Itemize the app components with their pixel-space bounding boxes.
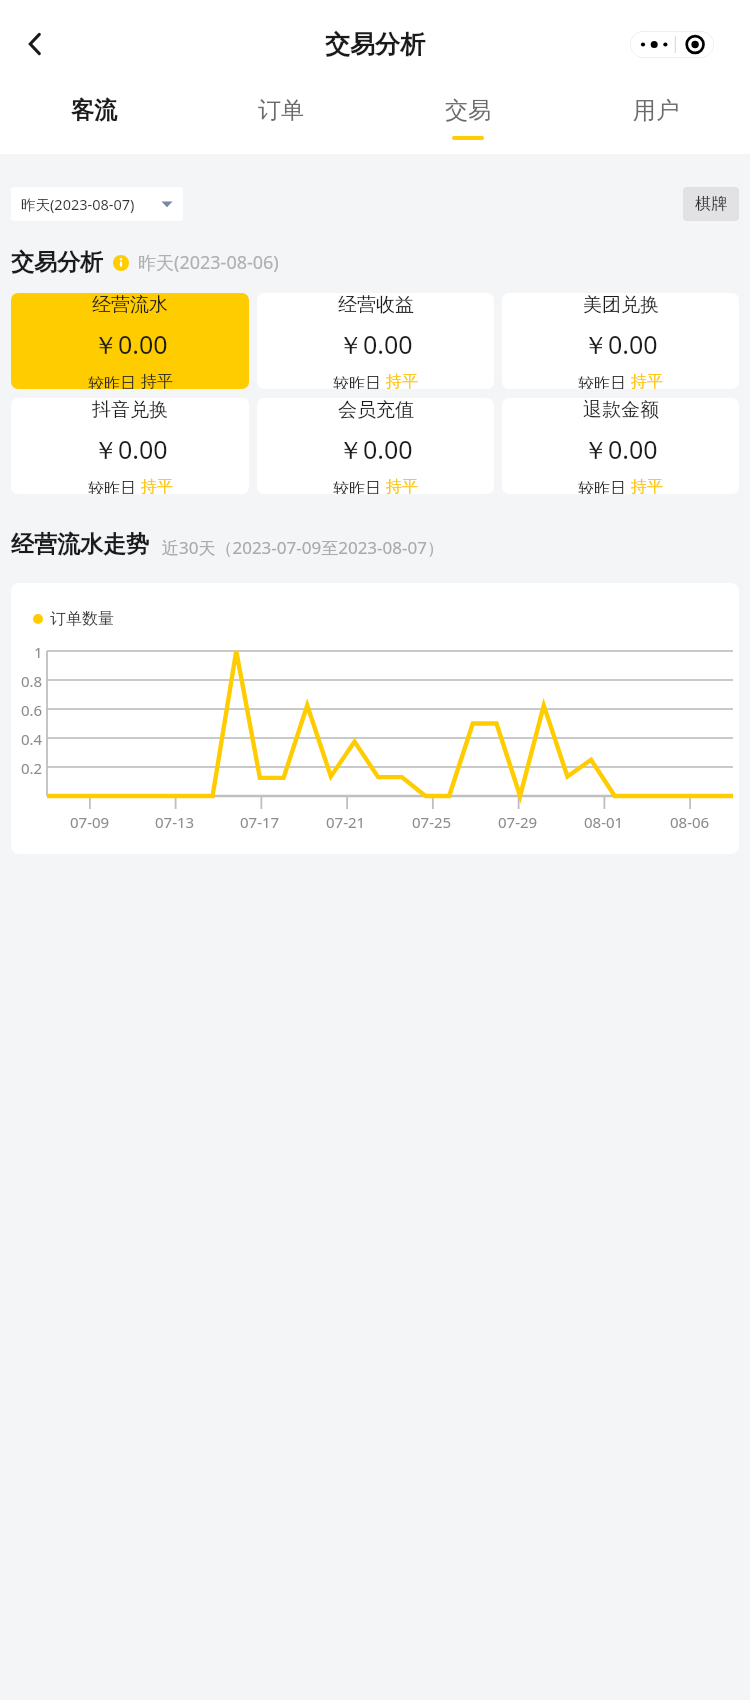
staticText: ￥0.00 [338,327,413,361]
staticText: 客流 [71,96,117,125]
staticText: ￥0.00 [338,432,413,466]
staticText: 昨天(2023-08-06) [138,250,279,275]
staticText: 07-09 [70,812,110,832]
staticText: 持平 [631,372,663,389]
staticText: 07-25 [412,812,452,832]
button[interactable]: 棋牌 [683,187,739,221]
button[interactable]: 订单数量 [11,583,739,854]
staticText: 08-01 [584,812,624,832]
button[interactable]: 经营收益 [257,293,494,389]
staticText: 经营流水 [92,293,168,317]
button[interactable]: 会员充值 [257,398,494,494]
staticText: 会员充值 [338,398,414,422]
staticText: 07-29 [498,812,538,832]
staticText: 持平 [141,372,173,389]
staticText: 抖音兑换 [92,398,168,422]
staticText: 订单数量 [50,609,114,629]
button[interactable]: Info [113,255,129,271]
staticText: 退款金额 [583,398,659,422]
staticText: 近30天（2023-07-09至2023-08-07） [162,536,444,559]
staticText: 美团兑换 [583,293,659,317]
staticText: 持平 [386,372,418,389]
staticText: 持平 [631,477,663,494]
button[interactable]: Back [8,17,62,71]
button[interactable]: More options [630,31,714,58]
staticText: 07-21 [326,812,366,832]
button[interactable]: 昨天(2023-08-07) [11,187,183,221]
staticText: 用户 [633,96,679,125]
staticText: 较昨日 [333,372,386,389]
staticText: 0.4 [21,729,43,749]
staticText: 0.8 [21,671,43,691]
staticText: 较昨日 [88,477,141,494]
staticText: 较昨日 [578,372,631,389]
staticText: 1 [34,642,43,662]
staticText: 交易 [445,96,491,125]
staticText: 0.2 [21,758,43,778]
button[interactable]: 退款金额 [502,398,739,494]
staticText: 昨天(2023-08-07) [21,194,135,214]
staticText: 0.6 [21,700,43,720]
staticText: 07-17 [240,812,280,832]
staticText: 订单 [258,96,304,125]
staticText: 棋牌 [695,194,727,214]
staticText: ￥0.00 [93,327,168,361]
button[interactable]: 客流 [0,88,187,154]
staticText: 较昨日 [88,372,141,389]
staticText: 08-06 [670,812,710,832]
button[interactable]: 订单 [187,88,374,154]
staticText: ￥0.00 [583,432,658,466]
staticText: 持平 [386,477,418,494]
button[interactable]: 用户 [562,88,750,154]
staticText: 经营收益 [338,293,414,317]
staticText: 较昨日 [333,477,386,494]
staticText: ￥0.00 [583,327,658,361]
staticText: 交易分析 [11,248,103,277]
button[interactable]: 经营流水 [11,293,249,389]
button[interactable]: 交易 [374,88,562,154]
staticText: 交易分析 [325,29,425,60]
staticText: 较昨日 [578,477,631,494]
staticText: 07-13 [155,812,195,832]
staticText: 经营流水走势 [11,530,149,559]
staticText: ￥0.00 [93,432,168,466]
button[interactable]: 美团兑换 [502,293,739,389]
staticText: 持平 [141,477,173,494]
button[interactable]: 抖音兑换 [11,398,249,494]
